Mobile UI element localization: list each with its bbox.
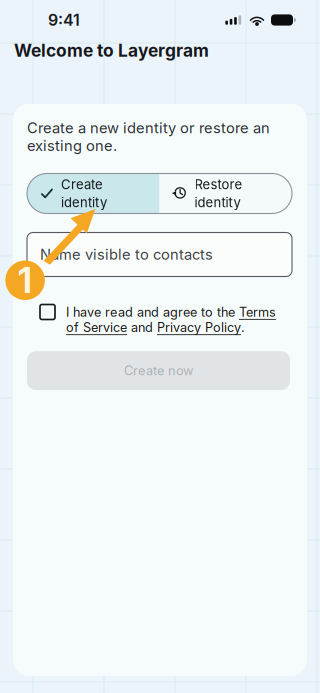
button[interactable]: Restore	[159, 173, 292, 213]
staticText: Create	[61, 177, 103, 192]
button[interactable]: Name visible to contacts	[27, 232, 292, 276]
button[interactable]: Create	[27, 173, 159, 213]
staticText: I have read and agree to the Terms of Se…	[66, 304, 276, 335]
staticText: Name visible to contacts	[40, 246, 213, 263]
button[interactable]: Create now	[27, 351, 290, 390]
staticText: Restore	[194, 177, 242, 192]
staticText: 1	[18, 259, 32, 301]
staticText: Welcome to Layergram	[14, 40, 209, 61]
staticText: 9:41	[48, 10, 80, 30]
staticText: identity	[194, 194, 240, 210]
staticText: Create now	[124, 363, 193, 378]
staticText: Create a new identity or restore an exis…	[27, 119, 270, 154]
staticText: identity	[61, 194, 107, 210]
button[interactable]: I have read and agree to the Terms of Se…	[27, 304, 292, 335]
